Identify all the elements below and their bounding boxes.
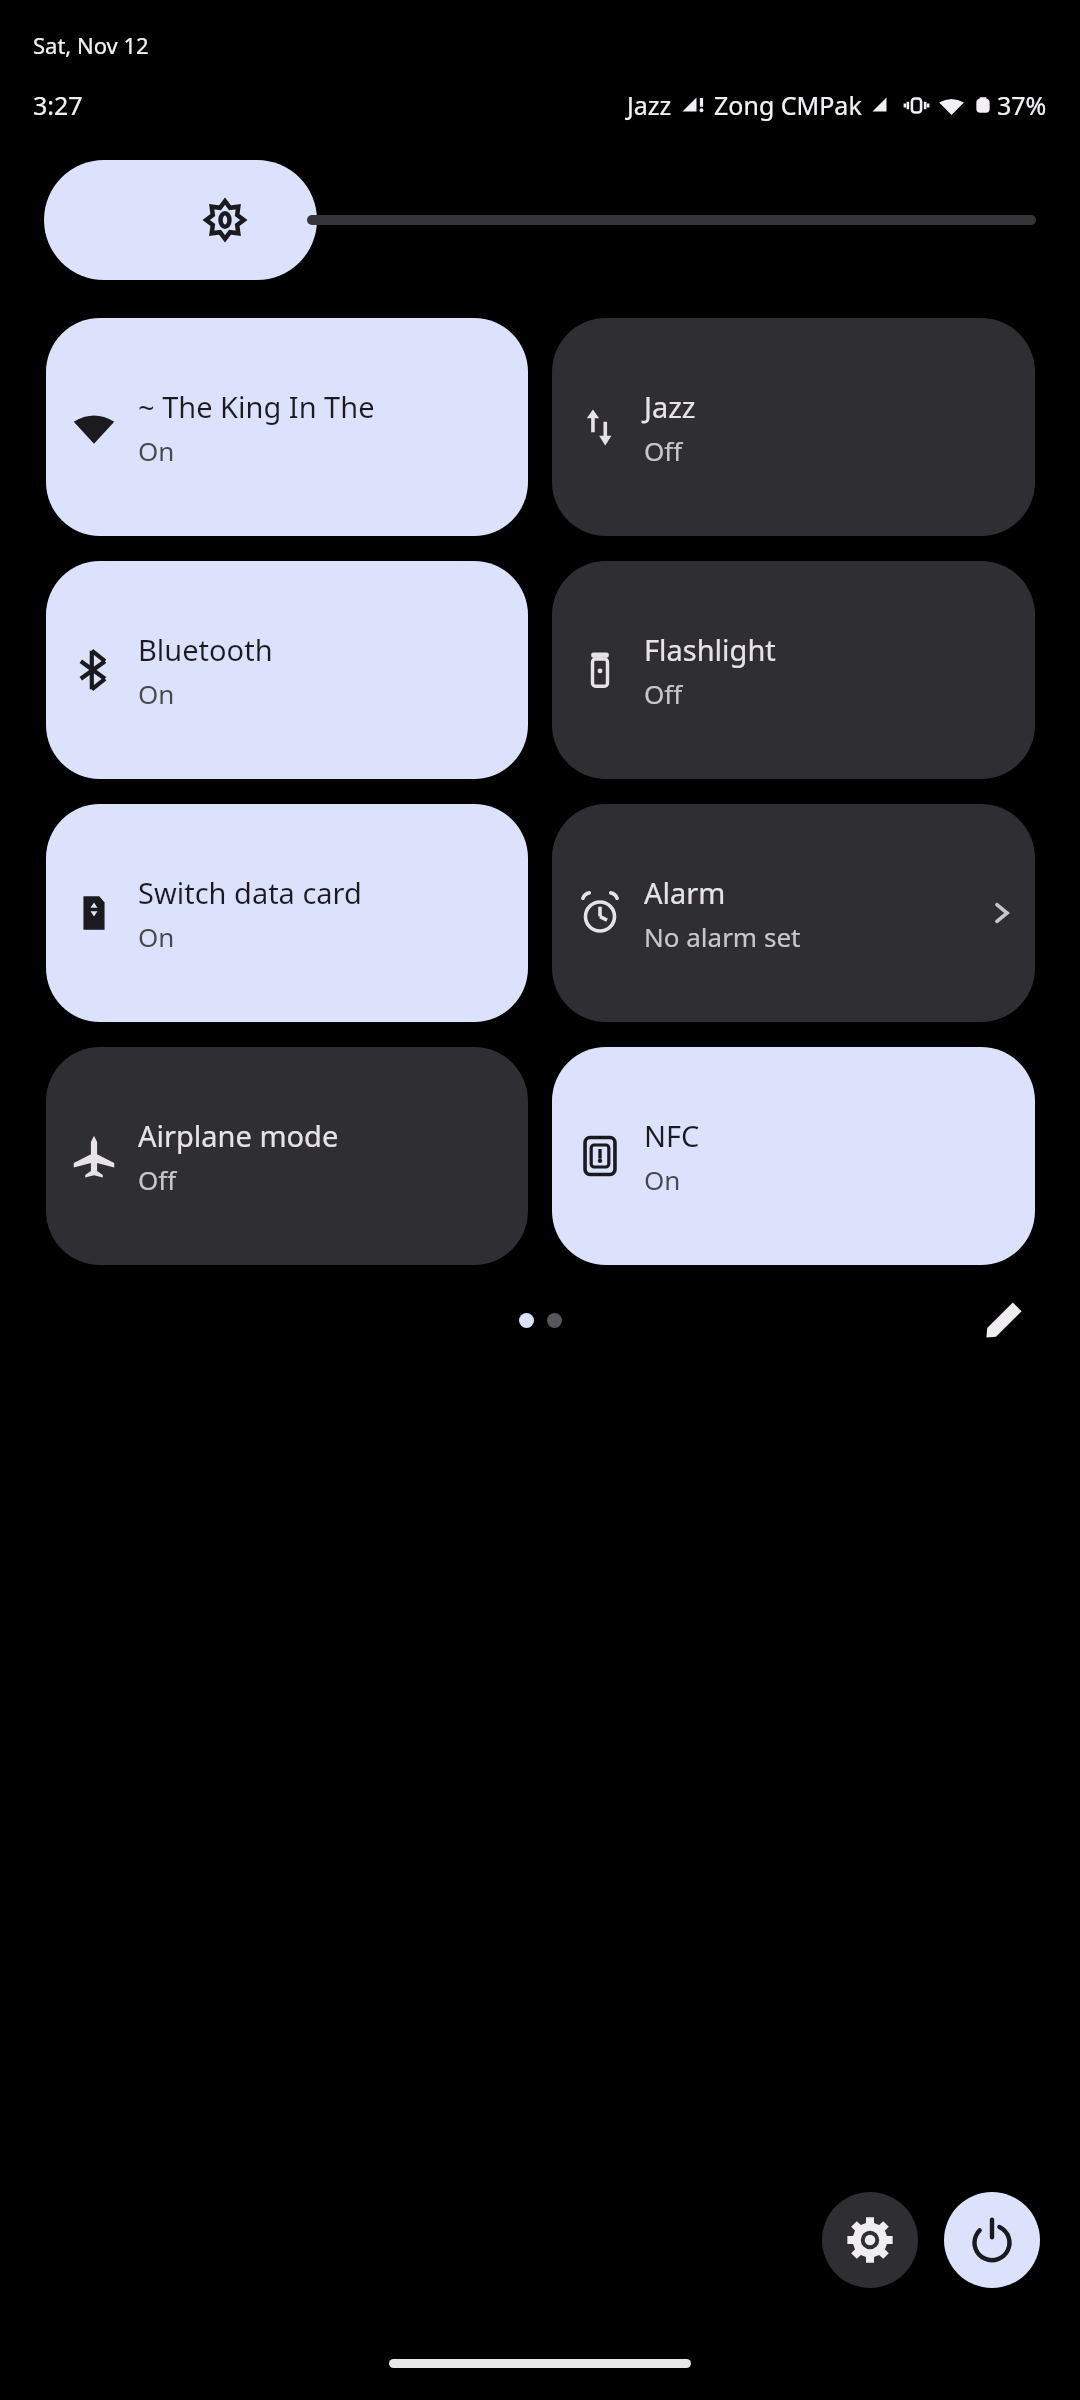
staticText: Off — [644, 433, 683, 468]
staticText: Jazz — [644, 387, 696, 426]
button[interactable]: Settings — [822, 2192, 918, 2288]
staticText: No alarm set — [644, 919, 801, 954]
button[interactable]: Alarm — [552, 804, 1035, 1022]
button[interactable]: Flashlight — [552, 561, 1035, 779]
button[interactable]: Edit tiles — [976, 1292, 1032, 1348]
staticText: 3:27 — [33, 88, 83, 122]
staticText: NFC — [644, 1116, 700, 1155]
button[interactable]: ~ The King In The — [46, 318, 528, 536]
staticText: Sat, Nov 12 — [33, 30, 149, 60]
staticText: On — [138, 919, 175, 954]
button[interactable]: Power — [944, 2192, 1040, 2288]
button[interactable]: Switch data card — [46, 804, 528, 1022]
staticText: On — [138, 676, 175, 711]
staticText: Alarm — [644, 873, 726, 912]
button[interactable] — [44, 160, 1036, 280]
staticText: Jazz — [627, 88, 672, 122]
staticText: ~ The King In The — [138, 387, 375, 426]
staticText: Switch data card — [138, 873, 362, 912]
staticText: 37% — [997, 88, 1047, 122]
button[interactable]: Jazz — [552, 318, 1035, 536]
button[interactable]: Airplane mode — [46, 1047, 528, 1265]
staticText: Off — [138, 1162, 177, 1197]
staticText: Zong CMPak — [714, 88, 862, 122]
button[interactable]: Bluetooth — [46, 561, 528, 779]
staticText: Off — [644, 676, 683, 711]
staticText: Flashlight — [644, 630, 776, 669]
staticText: Airplane mode — [138, 1116, 339, 1155]
staticText: On — [644, 1162, 681, 1197]
staticText: Bluetooth — [138, 630, 273, 669]
button[interactable]: NFC — [552, 1047, 1035, 1265]
staticText: On — [138, 433, 175, 468]
